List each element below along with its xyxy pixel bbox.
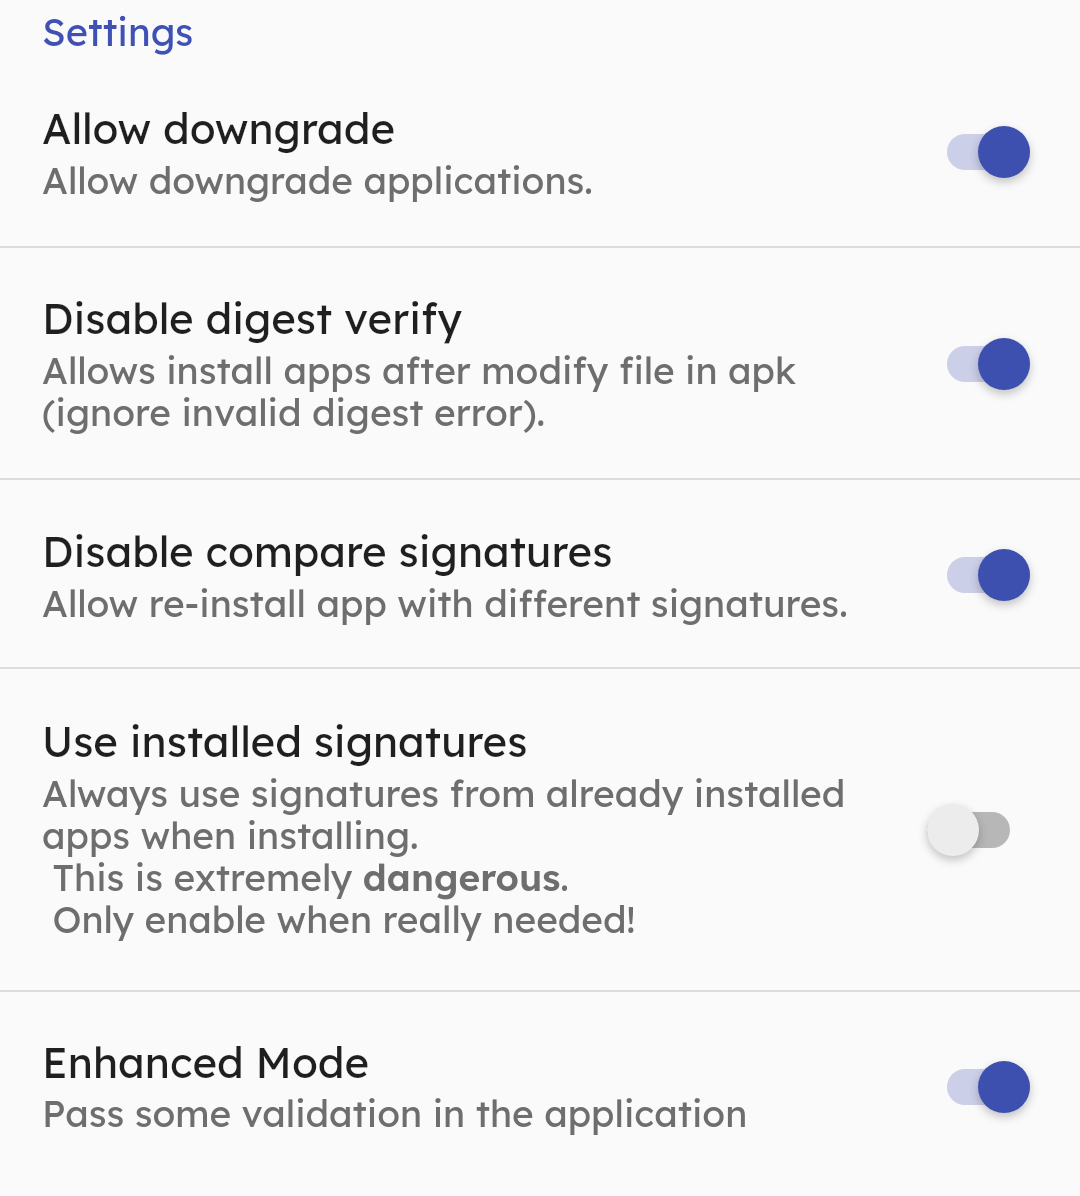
button[interactable]: Setting enabled: [900, 1039, 1060, 1135]
button[interactable]: Setting enabled: [900, 104, 1060, 200]
button[interactable]: Allow downgrade: [0, 0, 1080, 246]
button[interactable]: Disable digest verify: [0, 248, 1080, 478]
staticText: Pass some validation in the application: [42, 1093, 880, 1135]
staticText: Allow re-install app with different sign…: [42, 583, 880, 625]
staticText: Disable digest verify: [42, 296, 880, 344]
button[interactable]: Disable compare signatures: [0, 480, 1080, 667]
staticText: Use installed signatures: [42, 719, 880, 767]
button[interactable]: Setting disabled: [900, 782, 1060, 878]
button[interactable]: Enhanced Mode: [0, 992, 1080, 1196]
button[interactable]: Use installed signatures: [0, 669, 1080, 990]
staticText: Allow downgrade applications.: [42, 160, 880, 202]
staticText: Enhanced Mode: [42, 1040, 880, 1088]
staticText: Disable compare signatures: [42, 529, 880, 577]
staticText: Always use signatures from already insta…: [42, 773, 880, 941]
button[interactable]: Setting enabled: [900, 527, 1060, 623]
staticText: Settings: [42, 11, 194, 55]
staticText: Allows install apps after modify file in…: [42, 350, 880, 434]
button[interactable]: Setting enabled: [900, 316, 1060, 412]
staticText: Allow downgrade: [42, 106, 880, 154]
